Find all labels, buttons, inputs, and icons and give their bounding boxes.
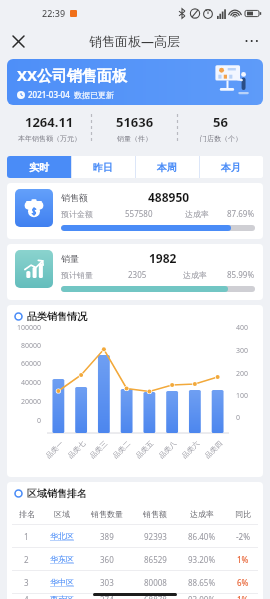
staticText: 303	[100, 577, 114, 588]
staticText: 2	[24, 554, 29, 565]
staticText: 389	[100, 531, 114, 542]
staticText: 销售额	[61, 192, 88, 203]
button[interactable]: 2	[11, 548, 259, 570]
button[interactable]: 51636	[92, 113, 177, 143]
staticText: 360	[100, 554, 114, 565]
staticText: 93.00%	[188, 594, 216, 599]
staticText: 区域销售排名	[27, 487, 87, 500]
staticText: 0	[36, 416, 41, 426]
staticText: 87.69%	[227, 208, 255, 219]
staticText: 6%	[237, 577, 249, 588]
staticText: 华中区	[50, 577, 74, 587]
staticText: 华东区	[50, 554, 74, 564]
staticText: 门店数（个）	[200, 134, 242, 143]
staticText: 品类三	[88, 439, 109, 460]
staticText: 22:39	[42, 7, 66, 19]
staticText: 300	[236, 346, 249, 356]
staticText: 51636	[116, 113, 154, 131]
staticText: 4	[24, 594, 29, 599]
staticText: 400	[236, 323, 249, 333]
button[interactable]: 实时	[7, 156, 71, 178]
button[interactable]: 销售额	[7, 183, 263, 239]
staticText: 0	[236, 413, 241, 423]
staticText: 实时	[29, 161, 49, 174]
button[interactable]: 1	[11, 525, 259, 547]
staticText: 274	[100, 594, 114, 599]
button[interactable]: 4	[11, 594, 259, 599]
staticText: 20000	[20, 397, 41, 407]
staticText: 60000	[20, 359, 41, 369]
staticText: 80008	[144, 577, 167, 588]
staticText: 排名	[19, 509, 35, 519]
staticText: 3	[24, 577, 29, 588]
staticText: 本周	[157, 161, 177, 174]
staticText: 86529	[144, 554, 167, 565]
button[interactable]: 56	[178, 113, 263, 143]
staticText: 1264.11	[25, 113, 74, 131]
button[interactable]: 本周	[135, 156, 199, 178]
staticText: 品类八	[157, 439, 178, 460]
staticText: 85.99%	[227, 269, 255, 280]
staticText: 预计销量	[61, 270, 93, 280]
staticText: 西南区	[50, 594, 74, 599]
staticText: 100	[236, 391, 249, 401]
button[interactable]: 昨日	[71, 156, 135, 178]
staticText: 1	[24, 531, 29, 542]
staticText: 1%	[237, 554, 249, 565]
button[interactable]: More options	[240, 29, 264, 53]
staticText: 56	[213, 113, 228, 131]
staticText: 557580	[125, 208, 153, 219]
staticText: 达成率	[185, 209, 209, 219]
staticText: -2%	[236, 531, 250, 542]
button[interactable]: 本月	[199, 156, 263, 178]
staticText: 40000	[20, 378, 41, 388]
staticText: 昨日	[93, 161, 113, 174]
staticText: 品类销售情况	[27, 310, 87, 323]
button[interactable]: Close	[6, 29, 30, 53]
staticText: 1%	[237, 594, 249, 599]
staticText: 2021-03-04 数据已更新	[28, 89, 114, 100]
staticText: 品类五	[134, 439, 155, 460]
staticText: 品类六	[180, 439, 201, 460]
staticText: 区域	[54, 509, 70, 519]
button[interactable]: 1264.11	[7, 113, 91, 143]
staticText: 销售面板—高层	[89, 32, 181, 50]
button[interactable]: 销量	[7, 244, 263, 300]
staticText: 86.40%	[188, 531, 216, 542]
staticText: XX公司销售面板	[17, 65, 128, 85]
staticText: 2305	[128, 269, 147, 280]
staticText: 100000	[16, 323, 41, 333]
staticText: 达成率	[190, 509, 214, 519]
staticText: 华北区	[50, 531, 74, 541]
staticText: 1982	[149, 250, 177, 266]
staticText: 本月	[221, 161, 241, 174]
staticText: 品类四	[203, 439, 224, 460]
staticText: 88.65%	[188, 577, 216, 588]
staticText: 达成率	[183, 270, 207, 280]
staticText: 品类七	[66, 439, 87, 460]
staticText: 销量（件）	[117, 134, 152, 143]
staticText: 销量	[61, 253, 79, 264]
staticText: 销售额	[143, 509, 167, 519]
staticText: 93.20%	[188, 554, 216, 565]
staticText: 92393	[144, 531, 167, 542]
staticText: 488950	[148, 189, 190, 205]
staticText: 同比	[235, 509, 251, 519]
staticText: 68878	[144, 594, 167, 599]
staticText: 品类二	[111, 439, 132, 460]
staticText: 预计金额	[61, 209, 93, 219]
button[interactable]: 3	[11, 571, 259, 593]
staticText: 品类一	[44, 439, 65, 460]
staticText: 200	[236, 369, 249, 379]
staticText: 销售数量	[91, 509, 123, 519]
button[interactable]: XX公司销售面板	[7, 59, 263, 105]
staticText: 本年销售额（万元）	[18, 134, 81, 143]
staticText: 80000	[20, 341, 41, 351]
